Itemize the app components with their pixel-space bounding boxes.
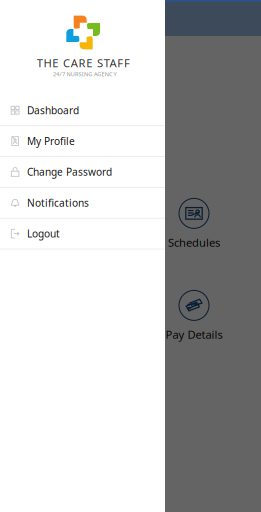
button[interactable]: Logout (0, 219, 165, 249)
button[interactable]: Notifications (0, 188, 165, 219)
button[interactable]: My Profile (0, 126, 165, 157)
staticText: Notifications (27, 196, 89, 210)
staticText: Logout (27, 227, 60, 240)
button[interactable]: Schedules (168, 198, 220, 250)
button[interactable]: Pay Details (165, 290, 222, 342)
staticText: My Profile (27, 134, 75, 148)
staticText: 24/7 NURSING AGENCY (53, 70, 116, 78)
staticText: Change Password (27, 165, 112, 179)
button[interactable]: Change Password (0, 157, 165, 188)
staticText: Pay Details (165, 327, 222, 342)
button[interactable]: Dashboard (0, 95, 165, 126)
staticText: Dashboard (27, 103, 79, 117)
staticText: THE CARE STAFF (37, 55, 130, 70)
staticText: Schedules (168, 235, 220, 250)
